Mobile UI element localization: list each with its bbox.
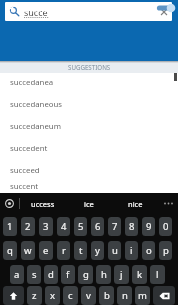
staticText: SUGGESTIONS bbox=[68, 63, 111, 71]
button[interactable]: 4 bbox=[57, 217, 70, 236]
button[interactable]: More suggestions bbox=[158, 193, 178, 214]
staticText: e bbox=[43, 244, 49, 257]
button[interactable]: 9 bbox=[142, 217, 155, 236]
button[interactable]: succedaneum bbox=[0, 117, 178, 139]
button[interactable]: Shift bbox=[3, 286, 24, 305]
button[interactable]: 0 bbox=[159, 217, 172, 236]
staticText: f bbox=[66, 268, 70, 281]
staticText: n bbox=[122, 289, 128, 302]
button[interactable]: u bbox=[108, 241, 121, 260]
staticText: b bbox=[104, 289, 110, 302]
staticText: succedanea bbox=[10, 77, 54, 88]
button[interactable]: 1 bbox=[3, 217, 17, 236]
staticText: succe bbox=[24, 6, 48, 18]
button[interactable]: b bbox=[99, 286, 114, 305]
button[interactable]: v bbox=[81, 286, 96, 305]
button[interactable]: o bbox=[142, 241, 155, 260]
staticText: l bbox=[156, 268, 159, 281]
button[interactable]: g bbox=[78, 265, 93, 284]
staticText: 6 bbox=[95, 220, 101, 233]
staticText: y bbox=[95, 244, 100, 257]
button[interactable]: ice bbox=[66, 193, 112, 214]
staticText: Offline Mode bbox=[23, 3, 72, 14]
button[interactable]: succent bbox=[0, 183, 178, 193]
button[interactable]: 6 bbox=[91, 217, 104, 236]
staticText: o bbox=[146, 244, 152, 257]
button[interactable]: Offline mode toggle bbox=[155, 0, 176, 16]
button[interactable]: Open navigation menu bbox=[2, 1, 20, 19]
button[interactable]: f bbox=[61, 265, 75, 284]
staticText: nice bbox=[128, 199, 143, 209]
button[interactable]: w bbox=[21, 241, 35, 260]
button[interactable]: a bbox=[10, 265, 24, 284]
staticText: z bbox=[32, 289, 37, 302]
button[interactable]: nice bbox=[112, 193, 158, 214]
staticText: q bbox=[7, 244, 13, 257]
button[interactable]: y bbox=[91, 241, 104, 260]
button[interactable]: t bbox=[74, 241, 87, 260]
button[interactable]: m bbox=[135, 286, 150, 305]
button[interactable]: 7 bbox=[108, 217, 121, 236]
staticText: 9 bbox=[146, 220, 152, 233]
staticText: g bbox=[83, 268, 89, 281]
button[interactable]: succe bbox=[5, 2, 172, 21]
button[interactable]: 2 bbox=[21, 217, 35, 236]
button[interactable]: succedaneous bbox=[0, 95, 178, 117]
button[interactable]: succeed bbox=[0, 161, 178, 183]
button[interactable]: z bbox=[27, 286, 42, 305]
staticText: d bbox=[48, 268, 54, 281]
button[interactable]: uccess bbox=[20, 193, 66, 214]
button[interactable]: l bbox=[150, 265, 165, 284]
button[interactable]: i bbox=[125, 241, 138, 260]
staticText: 5 bbox=[78, 220, 84, 233]
button[interactable]: succedent bbox=[0, 139, 178, 161]
button[interactable]: x bbox=[45, 286, 60, 305]
button[interactable]: 3 bbox=[39, 217, 53, 236]
staticText: 0 bbox=[163, 220, 169, 233]
staticText: m bbox=[138, 289, 147, 302]
staticText: succeed bbox=[10, 165, 40, 176]
button[interactable]: Clear search bbox=[156, 4, 171, 19]
staticText: v bbox=[86, 289, 91, 302]
staticText: 8 bbox=[129, 220, 135, 233]
staticText: u bbox=[112, 244, 118, 257]
button[interactable]: n bbox=[117, 286, 132, 305]
staticText: i bbox=[130, 244, 133, 257]
button[interactable]: r bbox=[57, 241, 70, 260]
button[interactable]: Backspace bbox=[153, 286, 175, 305]
staticText: r bbox=[62, 244, 66, 257]
button[interactable]: succedanea bbox=[0, 73, 178, 95]
staticText: a bbox=[14, 268, 20, 281]
staticText: succedaneous bbox=[10, 99, 63, 110]
button[interactable]: Store bbox=[158, 1, 175, 18]
staticText: 4 bbox=[61, 220, 67, 233]
button[interactable]: 8 bbox=[125, 217, 138, 236]
staticText: 1 bbox=[7, 220, 13, 233]
staticText: 7 bbox=[112, 220, 118, 233]
staticText: ice bbox=[84, 199, 94, 209]
staticText: w bbox=[24, 244, 32, 257]
button[interactable]: Switch language bbox=[0, 193, 19, 214]
button[interactable]: j bbox=[114, 265, 129, 284]
staticText: succedaneum bbox=[10, 121, 61, 132]
staticText: h bbox=[101, 268, 107, 281]
staticText: succent bbox=[10, 181, 39, 191]
button[interactable]: q bbox=[3, 241, 17, 260]
staticText: c bbox=[68, 289, 73, 302]
staticText: p bbox=[163, 244, 169, 257]
button[interactable]: h bbox=[96, 265, 111, 284]
staticText: x bbox=[50, 289, 56, 302]
button[interactable]: c bbox=[63, 286, 78, 305]
button[interactable]: s bbox=[27, 265, 41, 284]
button[interactable]: k bbox=[132, 265, 147, 284]
staticText: k bbox=[137, 268, 143, 281]
button[interactable]: e bbox=[39, 241, 53, 260]
button[interactable]: d bbox=[44, 265, 58, 284]
button[interactable]: Offline Mode bbox=[0, 0, 178, 16]
button[interactable]: 5 bbox=[74, 217, 87, 236]
staticText: j bbox=[120, 268, 123, 281]
button[interactable]: p bbox=[159, 241, 172, 260]
staticText: 2 bbox=[25, 220, 31, 233]
